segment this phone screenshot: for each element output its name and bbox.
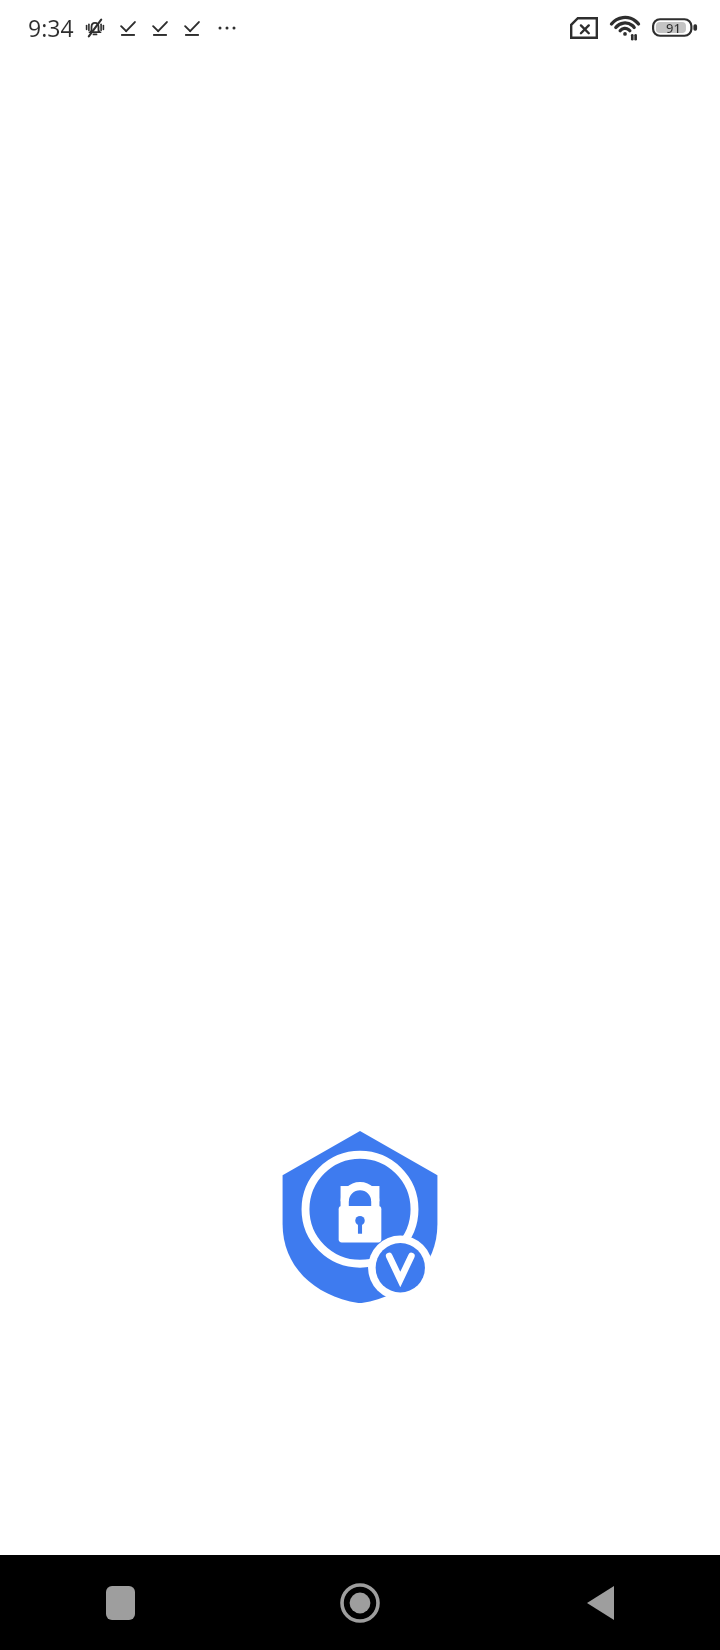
button[interactable]: Back bbox=[480, 1555, 720, 1650]
staticText: 91 bbox=[666, 19, 681, 37]
button[interactable]: Home bbox=[240, 1555, 480, 1650]
staticText: 9:34 bbox=[28, 12, 74, 43]
button[interactable]: Recent apps bbox=[0, 1555, 240, 1650]
